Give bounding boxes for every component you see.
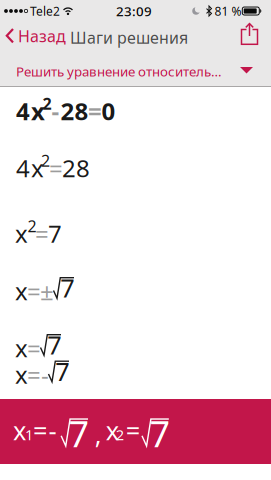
staticText: - [51,95,59,127]
staticText: 28 [60,95,88,127]
staticText: , [95,418,102,451]
staticText: Tele2 [30,3,60,19]
staticText: x [15,332,28,364]
staticText: 2 [41,150,50,171]
staticText: 2 [116,425,124,444]
staticText: 7 [55,354,69,388]
staticText: x [15,359,28,390]
staticText: 7 [60,271,74,304]
staticText: 7 [149,409,170,457]
staticText: 7 [48,218,62,249]
staticText: 2 [42,93,51,114]
staticText: = [35,218,49,249]
button[interactable]: Share [240,23,261,45]
staticText: = [27,359,41,390]
staticText: 2 [27,215,36,237]
staticText: 7 [69,409,90,457]
staticText: Решить уравнение относитель… [16,62,222,80]
staticText: Назад [18,25,66,47]
staticText: x [13,414,26,447]
button[interactable]: Решить уравнение относитель… [0,52,271,86]
staticText: 7 [47,328,61,361]
staticText: ± [40,275,54,307]
staticText: x [106,414,119,447]
staticText: = [49,152,63,184]
staticText: 81 % [214,3,241,19]
staticText: x [15,218,28,249]
staticText: x [31,152,44,184]
staticText: - [48,414,56,447]
staticText: 4 [16,152,30,184]
button[interactable]: Назад [6,20,66,52]
staticText: 4 [16,95,30,127]
staticText: x [15,275,28,307]
staticText: = [27,332,41,364]
staticText: 0 [101,95,115,127]
staticText: Шаги решения [70,27,188,48]
staticText: 28 [62,152,90,184]
staticText: = [126,414,140,447]
staticText: = [88,95,102,127]
staticText: x [31,95,45,127]
staticText: 1 [25,425,33,444]
staticText: - [41,359,49,390]
staticText: = [33,414,47,447]
staticText: = [27,275,41,307]
staticText: 23:09 [116,2,152,20]
